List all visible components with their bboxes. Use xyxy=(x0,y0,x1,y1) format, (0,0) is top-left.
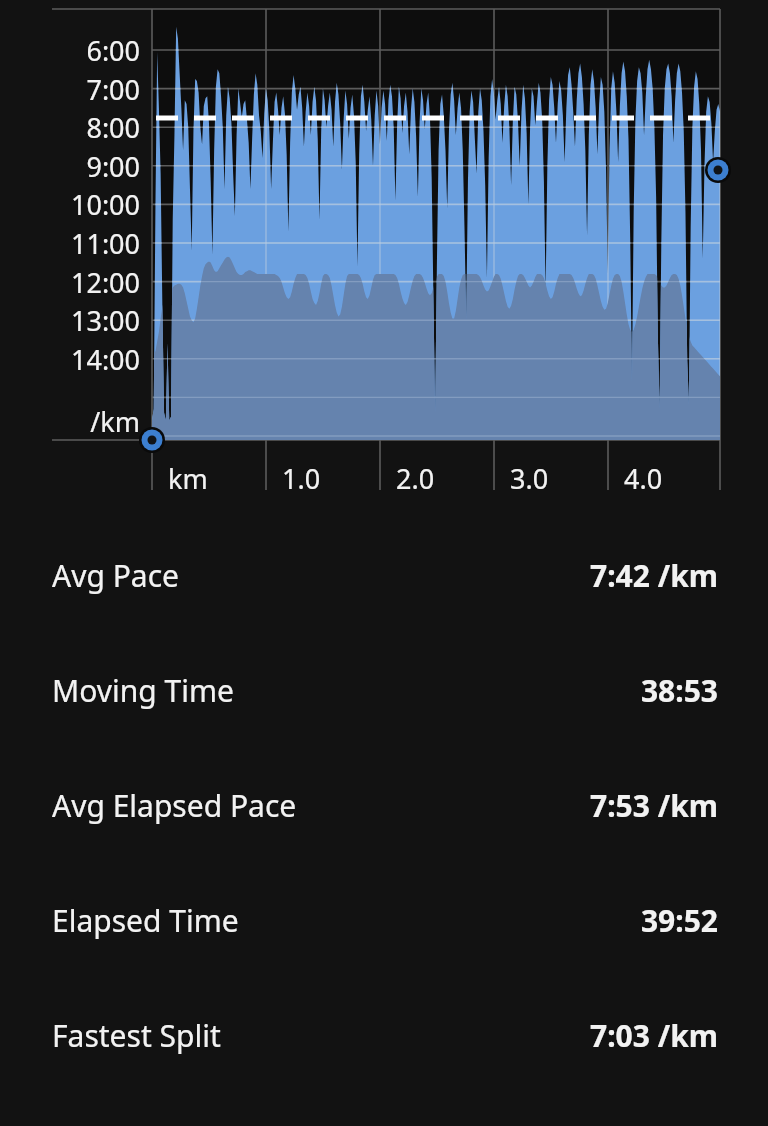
button[interactable]: Elapsed Time xyxy=(0,863,768,978)
staticText: 13:00 xyxy=(0,302,140,339)
staticText: km xyxy=(168,460,208,497)
staticText: 38:53 xyxy=(640,670,718,711)
staticText: Elapsed Time xyxy=(52,900,239,941)
staticText: 7:42 /km xyxy=(589,555,718,596)
staticText: 7:03 /km xyxy=(589,1015,718,1056)
staticText: 7:00 xyxy=(0,71,140,108)
staticText: /km xyxy=(0,403,140,440)
staticText: 14:00 xyxy=(0,341,140,378)
staticText: 11:00 xyxy=(0,225,140,262)
staticText: 2.0 xyxy=(396,460,435,497)
staticText: 10:00 xyxy=(0,186,140,223)
staticText: 9:00 xyxy=(0,148,140,185)
staticText: Moving Time xyxy=(52,670,234,711)
staticText: 12:00 xyxy=(0,264,140,301)
button[interactable]: Moving Time xyxy=(0,633,768,748)
staticText: 6:00 xyxy=(0,32,140,69)
staticText: Avg Pace xyxy=(52,555,179,596)
staticText: 8:00 xyxy=(0,109,140,146)
button[interactable]: Avg Pace xyxy=(0,518,768,633)
staticText: Avg Elapsed Pace xyxy=(52,785,297,826)
staticText: Fastest Split xyxy=(52,1015,221,1056)
staticText: 3.0 xyxy=(510,460,549,497)
staticText: 7:53 /km xyxy=(589,785,718,826)
button[interactable]: Fastest Split xyxy=(0,978,768,1093)
staticText: 1.0 xyxy=(282,460,321,497)
button[interactable]: Avg Elapsed Pace xyxy=(0,748,768,863)
staticText: 39:52 xyxy=(640,900,718,941)
staticText: 4.0 xyxy=(624,460,663,497)
button[interactable]: Pace chart xyxy=(0,0,768,518)
